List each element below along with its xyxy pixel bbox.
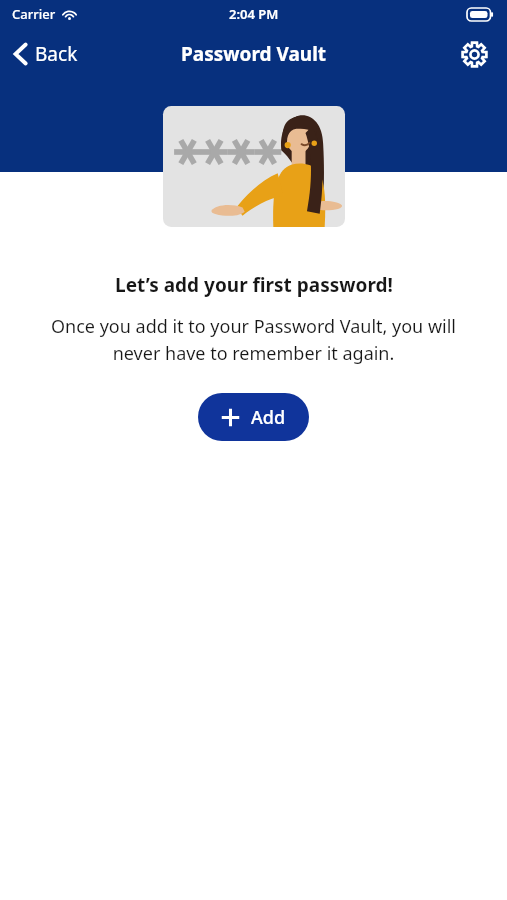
staticText: Back	[35, 41, 78, 67]
staticText: Password Vault	[181, 41, 327, 67]
button[interactable]: Add	[198, 393, 309, 441]
button[interactable]: Settings	[452, 32, 496, 76]
staticText: Let’s add your first password!	[115, 272, 393, 298]
staticText: Carrier	[12, 5, 56, 23]
staticText: Add	[251, 405, 286, 430]
staticText: Once you add it to your Password Vault, …	[28, 314, 479, 365]
staticText: 2:04 PM	[229, 5, 279, 23]
button[interactable]: Back	[0, 31, 92, 77]
